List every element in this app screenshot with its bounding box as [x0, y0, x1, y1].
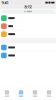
- staticText: 发现: [24, 4, 32, 9]
- button[interactable]: 微信: [0, 87, 14, 100]
- button[interactable]: [0, 52, 56, 59]
- staticText: 9:41: [2, 0, 9, 5]
- button[interactable]: [0, 30, 56, 38]
- button[interactable]: 发现: [28, 87, 42, 100]
- button[interactable]: [0, 22, 56, 30]
- button[interactable]: 通讯录: [14, 87, 28, 100]
- button[interactable]: [0, 44, 56, 51]
- button[interactable]: 我: [42, 87, 56, 100]
- button[interactable]: [0, 14, 56, 22]
